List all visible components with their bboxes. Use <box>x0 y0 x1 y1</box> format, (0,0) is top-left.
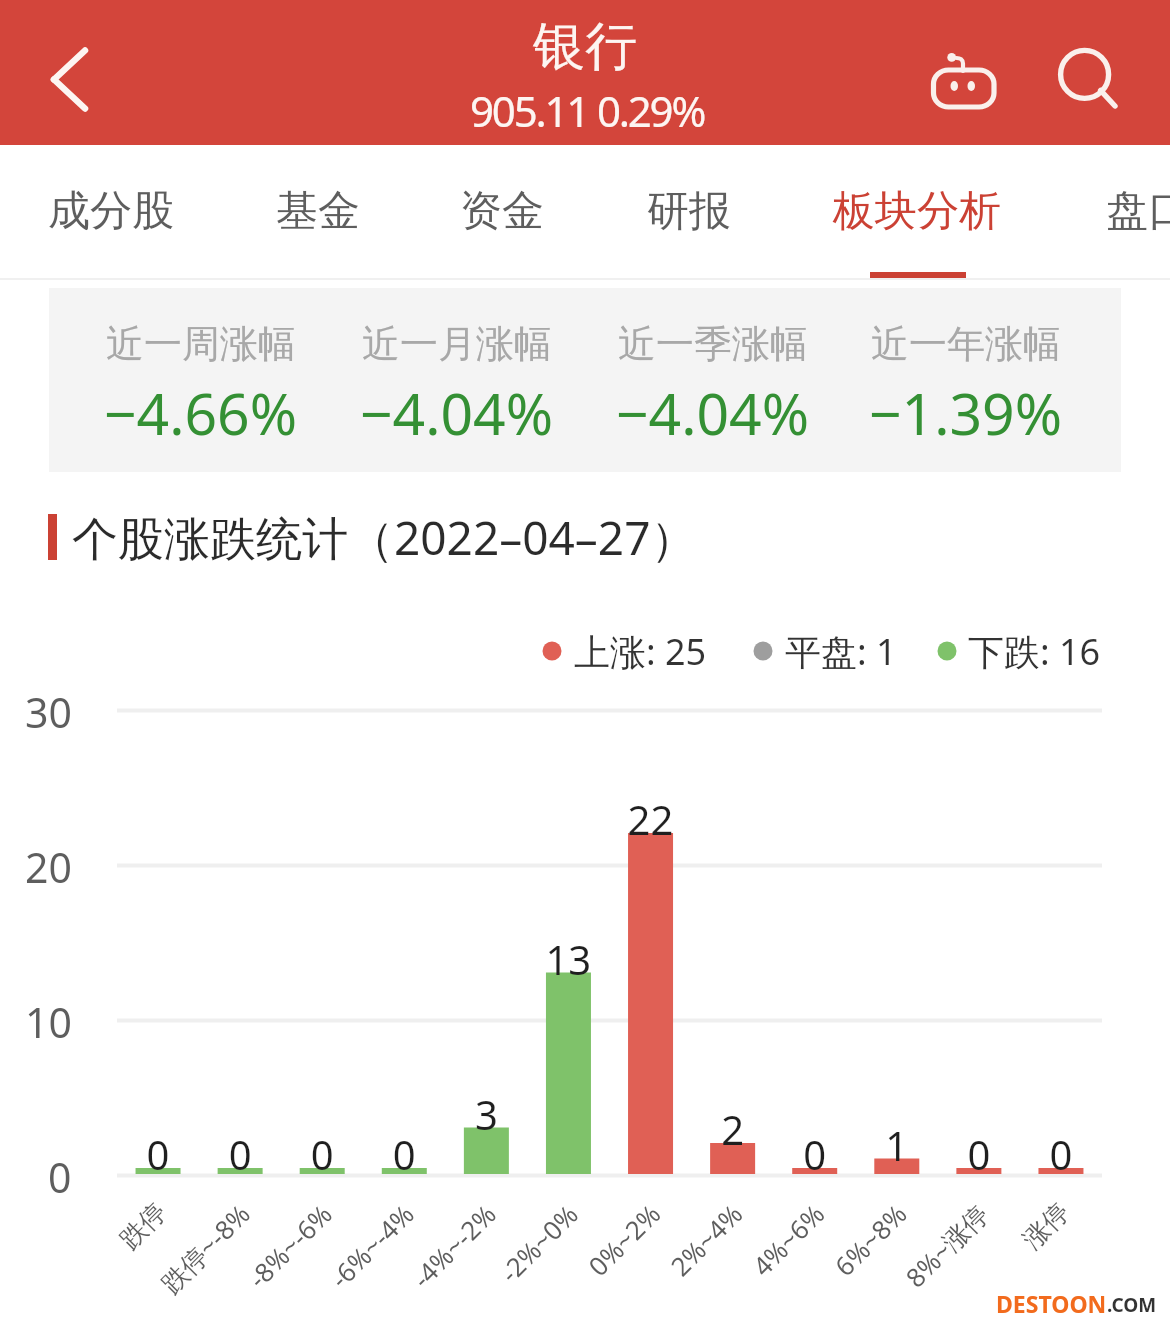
staticText: 个股涨跌统计（2022–04–27） <box>72 506 697 569</box>
staticText: 资金 <box>460 185 544 238</box>
staticText: 研报 <box>647 185 731 238</box>
staticText: 盘口 <box>1106 185 1170 238</box>
button[interactable]: 研报 <box>628 145 750 275</box>
button[interactable]: 基金 <box>257 145 379 275</box>
staticText: −4.66% <box>104 374 298 452</box>
staticText: 近一月涨幅 <box>362 320 552 368</box>
button[interactable]: 近一周涨幅 <box>71 288 331 472</box>
staticText: −4.04% <box>616 374 810 452</box>
staticText: −4.04% <box>360 374 554 452</box>
staticText: −1.39% <box>869 374 1063 452</box>
button[interactable]: 资金 <box>441 145 563 275</box>
staticText: 银行 <box>533 14 637 80</box>
button[interactable]: Back <box>0 0 145 145</box>
staticText: 近一周涨幅 <box>106 320 296 368</box>
staticText: 近一年涨幅 <box>871 320 1061 368</box>
button[interactable]: 成分股 <box>29 145 193 275</box>
button[interactable]: 近一年涨幅 <box>836 288 1096 472</box>
staticText: 近一季涨幅 <box>618 320 808 368</box>
button[interactable]: Search <box>1030 17 1142 129</box>
staticText: 905.11 0.29% <box>470 82 705 139</box>
button[interactable]: 盘口 <box>1087 145 1170 275</box>
button[interactable]: 近一季涨幅 <box>583 288 843 472</box>
button[interactable]: 板块分析 <box>814 145 1020 275</box>
staticText: 成分股 <box>48 185 174 238</box>
staticText: 基金 <box>276 185 360 238</box>
staticText: 板块分析 <box>833 185 1001 238</box>
button[interactable]: 近一月涨幅 <box>327 288 587 472</box>
button[interactable]: Assistant <box>902 17 1026 129</box>
